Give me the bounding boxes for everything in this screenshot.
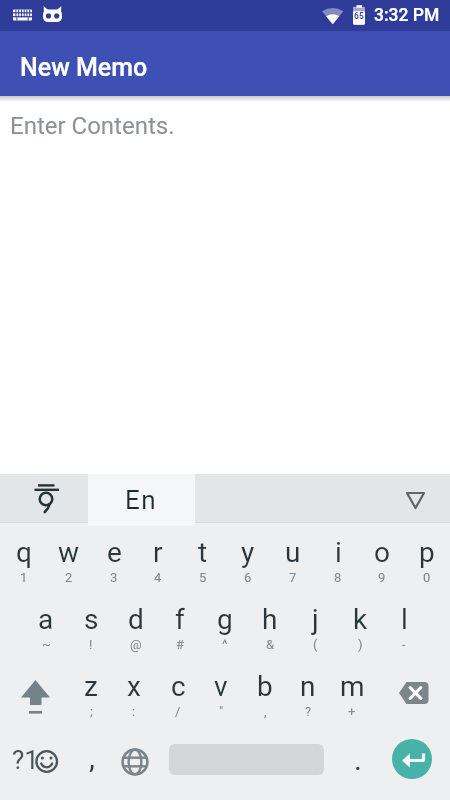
- staticText: i: [335, 536, 342, 569]
- staticText: 6: [244, 570, 252, 585]
- staticText: k: [353, 603, 368, 636]
- button[interactable]: c: [156, 668, 200, 704]
- button[interactable]: w: [47, 534, 91, 570]
- staticText: :: [132, 704, 136, 719]
- staticText: Enter Contents.: [10, 112, 175, 140]
- button[interactable]: t: [181, 534, 225, 570]
- staticText: e: [107, 536, 122, 569]
- button[interactable]: .: [338, 744, 378, 778]
- staticText: &: [266, 637, 275, 652]
- staticText: 4: [154, 570, 162, 585]
- button[interactable]: [13, 672, 58, 718]
- staticText: c: [171, 670, 186, 703]
- staticText: @: [130, 637, 142, 652]
- button[interactable]: v: [199, 668, 243, 704]
- button[interactable]: b: [243, 668, 287, 704]
- staticText: y: [241, 536, 255, 569]
- staticText: (: [313, 637, 318, 652]
- button[interactable]: f: [158, 601, 202, 637]
- staticText: ?: [305, 704, 312, 719]
- staticText: ): [358, 637, 363, 652]
- staticText: ;: [90, 704, 93, 719]
- staticText: 0: [423, 570, 431, 585]
- button[interactable]: Enter Contents.: [0, 96, 450, 474]
- button[interactable]: [395, 678, 435, 708]
- button[interactable]: e: [92, 534, 136, 570]
- staticText: .: [354, 742, 362, 776]
- button[interactable]: [399, 485, 432, 515]
- staticText: #: [176, 637, 185, 652]
- staticText: ,: [89, 740, 95, 775]
- button[interactable]: n: [286, 668, 330, 704]
- button[interactable]: ?1: [6, 744, 62, 778]
- staticText: -: [402, 637, 406, 652]
- button[interactable]: k: [338, 601, 382, 637]
- staticText: b: [257, 670, 273, 703]
- button[interactable]: m: [330, 668, 374, 704]
- button[interactable]: ,: [71, 740, 112, 775]
- button[interactable]: j: [293, 601, 337, 637]
- staticText: a: [38, 603, 54, 636]
- button[interactable]: [0, 474, 88, 523]
- staticText: ^: [222, 637, 228, 652]
- button[interactable]: [392, 739, 432, 779]
- staticText: ?1: [12, 745, 39, 775]
- staticText: New Memo: [20, 53, 148, 82]
- staticText: s: [84, 603, 99, 636]
- button[interactable]: h: [248, 601, 292, 637]
- staticText: j: [312, 603, 319, 636]
- staticText: 3:32 PM: [374, 5, 440, 26]
- button[interactable]: d: [114, 601, 158, 637]
- button[interactable]: i: [316, 534, 360, 570]
- staticText: +: [348, 704, 356, 719]
- staticText: !: [89, 637, 93, 652]
- staticText: 2: [65, 570, 73, 585]
- button[interactable]: s: [69, 601, 113, 637]
- staticText: 8: [334, 570, 342, 585]
- staticText: m: [340, 670, 365, 703]
- staticText: o: [374, 536, 390, 569]
- button[interactable]: u: [271, 534, 315, 570]
- button[interactable]: r: [136, 534, 180, 570]
- staticText: z: [84, 670, 98, 703]
- staticText: 3: [110, 570, 118, 585]
- button[interactable]: [114, 742, 156, 782]
- staticText: ,: [264, 704, 267, 719]
- button[interactable]: a: [24, 601, 68, 637]
- staticText: t: [198, 536, 208, 569]
- staticText: 65: [353, 11, 365, 21]
- staticText: g: [217, 603, 233, 636]
- staticText: ": [219, 704, 224, 719]
- button[interactable]: x: [112, 668, 156, 704]
- staticText: ~: [42, 637, 51, 652]
- staticText: 1: [20, 570, 28, 585]
- button[interactable]: l: [382, 601, 426, 637]
- staticText: r: [153, 536, 163, 569]
- staticText: w: [58, 536, 80, 569]
- button[interactable]: z: [69, 668, 113, 704]
- button[interactable]: o: [360, 534, 404, 570]
- staticText: l: [401, 603, 408, 636]
- staticText: 9: [378, 570, 386, 585]
- staticText: q: [16, 536, 32, 569]
- staticText: /: [175, 704, 181, 719]
- button[interactable]: g: [203, 601, 247, 637]
- staticText: En: [125, 485, 158, 515]
- button[interactable]: En: [88, 474, 195, 526]
- staticText: 7: [289, 570, 297, 585]
- staticText: d: [128, 603, 144, 636]
- staticText: p: [419, 536, 435, 569]
- staticText: u: [285, 536, 301, 569]
- staticText: v: [214, 670, 228, 703]
- staticText: h: [262, 603, 278, 636]
- button[interactable]: y: [226, 534, 270, 570]
- staticText: n: [300, 670, 316, 703]
- button[interactable]: q: [2, 534, 46, 570]
- staticText: f: [175, 603, 185, 636]
- staticText: 5: [199, 570, 207, 585]
- staticText: x: [127, 670, 141, 703]
- button[interactable]: p: [405, 534, 449, 570]
